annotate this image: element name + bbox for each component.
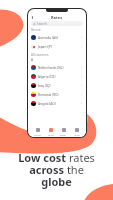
button[interactable]: Netherlands (NL) <box>28 63 86 72</box>
button[interactable]: Home <box>33 127 42 137</box>
staticText: Romania (RO) <box>38 93 59 97</box>
button[interactable]: Rates <box>59 127 68 137</box>
staticText: A <box>31 58 34 62</box>
button[interactable]: Australia (AU) <box>28 33 86 42</box>
staticText: Home <box>34 133 41 136</box>
button[interactable]: Angola (AO) <box>28 99 86 108</box>
staticText: Algeria (DZ) <box>38 75 56 79</box>
staticText: Recent <box>31 28 41 32</box>
button[interactable]: Iraq (IQ) <box>28 81 86 90</box>
staticText: Netherlands (NL) <box>38 66 64 70</box>
button[interactable]: Back <box>30 15 35 20</box>
button[interactable]: More <box>73 127 81 137</box>
button[interactable]: Romania (RO) <box>28 90 86 99</box>
staticText: Rates <box>60 133 67 136</box>
staticText: More <box>74 133 80 136</box>
button[interactable]: Algeria (DZ) <box>28 72 86 81</box>
staticText: Iraq (IQ) <box>38 84 51 88</box>
button[interactable]: Search <box>31 21 83 26</box>
staticText: Search <box>37 22 47 26</box>
staticText: Low cost rates across the globe <box>18 150 95 189</box>
button[interactable]: Japan (JP) <box>28 42 86 51</box>
staticText: All countries <box>31 53 49 57</box>
staticText: Japan (JP) <box>38 45 53 49</box>
staticText: Rates <box>51 15 63 20</box>
staticText: Australia (AU) <box>38 36 59 40</box>
staticText: Angola (AO) <box>38 102 56 106</box>
staticText: Send <box>48 133 54 136</box>
button[interactable]: Send <box>47 127 55 137</box>
